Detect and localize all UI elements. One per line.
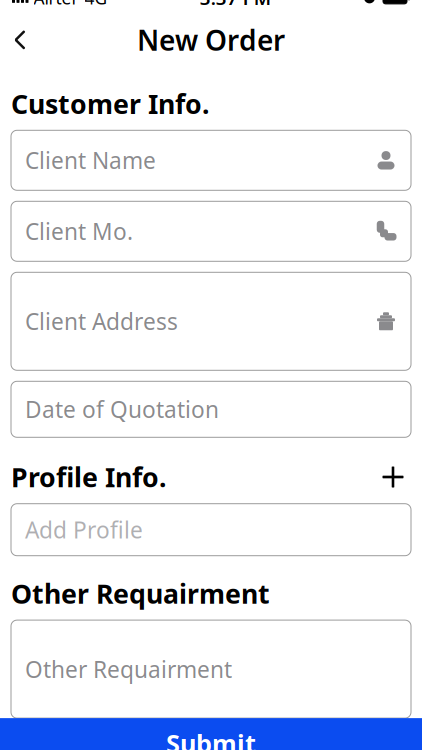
- button[interactable]: Add Profile: [11, 504, 411, 556]
- button[interactable]: Other Requairment: [11, 620, 411, 718]
- button[interactable]: Client Mo.: [11, 201, 411, 261]
- staticText: Customer Info.: [11, 86, 209, 121]
- button[interactable]: Date of Quotation: [11, 381, 411, 437]
- button[interactable]: Client Name: [11, 130, 411, 190]
- staticText: Client Name: [25, 145, 156, 175]
- staticText: Other Requairment: [11, 576, 270, 611]
- staticText: Add Profile: [25, 515, 143, 545]
- staticText: Airtel: [33, 0, 75, 9]
- staticText: Profile Info.: [11, 459, 166, 495]
- button[interactable]: Add Profile: [375, 461, 411, 493]
- staticText: Date of Quotation: [25, 394, 219, 424]
- staticText: Client Mo.: [25, 216, 133, 246]
- staticText: 3:37 PM: [200, 0, 271, 10]
- staticText: New Order: [137, 21, 285, 58]
- button[interactable]: Submit: [0, 718, 422, 750]
- button[interactable]: Back: [0, 20, 40, 60]
- staticText: Other Requairment: [25, 654, 232, 684]
- staticText: 4G: [84, 0, 107, 9]
- staticText: Submit: [166, 726, 256, 750]
- button[interactable]: Client Address: [11, 272, 411, 370]
- staticText: Client Address: [25, 306, 178, 336]
